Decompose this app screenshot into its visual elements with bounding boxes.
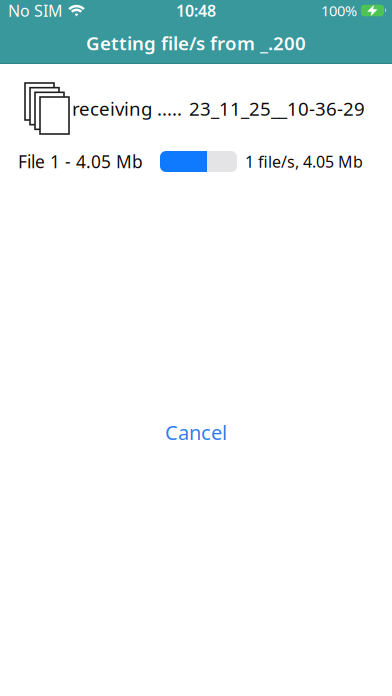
button[interactable]: Cancel: [165, 419, 227, 446]
staticText: 100%: [321, 1, 357, 20]
staticText: Getting file/s from _.200: [86, 31, 306, 55]
staticText: 10:48: [176, 0, 216, 21]
staticText: 23_11_25__10-36-29: [189, 96, 365, 121]
staticText: receiving .....: [72, 96, 182, 121]
staticText: No SIM: [8, 0, 63, 21]
staticText: File 1 - 4.05 Mb: [18, 150, 143, 173]
staticText: Cancel: [165, 419, 227, 446]
staticText: 1 file/s, 4.05 Mb: [245, 151, 363, 172]
